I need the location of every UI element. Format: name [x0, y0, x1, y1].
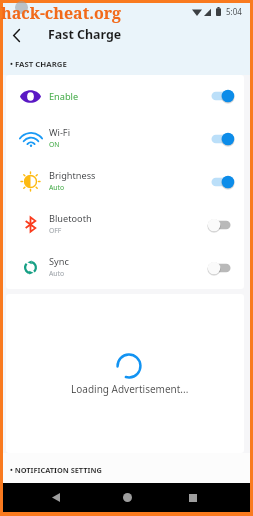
staticText: Auto: [49, 269, 65, 278]
staticText: • NOTIFICATION SETTING: [10, 465, 102, 475]
button[interactable]: Brightness: [6, 160, 244, 203]
button[interactable]: Enable: [6, 75, 244, 117]
staticText: Auto: [49, 183, 65, 192]
staticText: OFF: [49, 226, 62, 235]
button[interactable]: Home: [105, 483, 149, 512]
staticText: Brightness: [49, 169, 96, 182]
staticText: Loading Advertisement...: [71, 382, 189, 396]
staticText: Fast Charge: [48, 26, 122, 43]
staticText: Bluetooth: [49, 212, 92, 225]
button[interactable]: Bluetooth: [6, 203, 244, 246]
staticText: Sync: [49, 255, 69, 268]
staticText: ON: [49, 140, 60, 149]
staticText: hack-cheat.org: [1, 2, 122, 24]
staticText: • FAST CHARGE: [10, 59, 67, 70]
button[interactable]: Back: [3, 20, 29, 50]
staticText: Wi-Fi: [49, 126, 71, 139]
button[interactable]: Sync: [6, 246, 244, 289]
staticText: Enable: [49, 90, 79, 103]
button[interactable]: Wi-Fi: [6, 117, 244, 160]
button[interactable]: Recent apps: [171, 483, 215, 512]
button[interactable]: Back: [34, 483, 78, 512]
staticText: 5:04: [226, 6, 242, 17]
